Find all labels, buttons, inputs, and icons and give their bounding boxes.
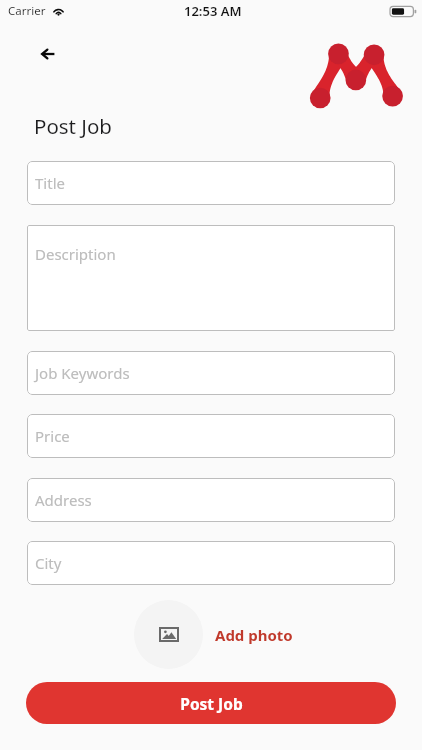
- staticText: Description: [35, 244, 116, 264]
- staticText: City: [35, 553, 62, 573]
- staticText: Post Job: [34, 112, 112, 140]
- staticText: Post Job: [180, 693, 243, 714]
- button[interactable]: Job Keywords: [27, 351, 395, 395]
- staticText: 12:53 AM: [184, 2, 242, 20]
- button[interactable]: Back: [29, 35, 67, 73]
- button[interactable]: Add photo image: [134, 600, 203, 669]
- staticText: Price: [35, 426, 70, 446]
- button[interactable]: Address: [27, 478, 395, 522]
- button[interactable]: Price: [27, 414, 395, 458]
- button[interactable]: City: [27, 541, 395, 585]
- button[interactable]: Post Job: [26, 682, 396, 724]
- button[interactable]: Title: [27, 161, 395, 205]
- staticText: Add photo: [215, 625, 293, 645]
- staticText: Title: [35, 173, 65, 193]
- staticText: Job Keywords: [35, 363, 130, 383]
- button[interactable]: Add photo: [215, 625, 293, 645]
- staticText: Address: [35, 490, 92, 510]
- staticText: Carrier: [8, 3, 46, 19]
- button[interactable]: Description: [27, 225, 395, 331]
